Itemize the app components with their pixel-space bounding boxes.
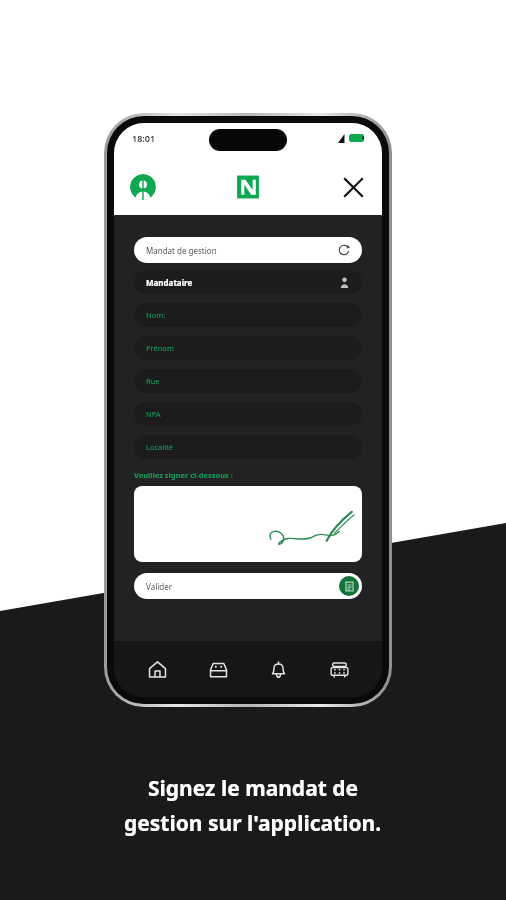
staticText: Veuillez signer ci-dessous : (134, 470, 233, 480)
staticText: Prénom (146, 343, 174, 353)
button[interactable]: Localité (134, 435, 362, 459)
staticText: Mandataire (146, 277, 193, 288)
button[interactable]: Fermer (340, 174, 366, 200)
button[interactable]: Rue (134, 369, 362, 393)
button[interactable]: Mandataire (134, 270, 362, 294)
button[interactable]: Logo (235, 174, 261, 200)
button[interactable]: NPA (134, 402, 362, 426)
button[interactable]: Prénom (134, 336, 362, 360)
button[interactable]: Notifications (261, 652, 295, 686)
button[interactable]: Zone de signature (134, 486, 362, 562)
button[interactable]: Contact (322, 652, 356, 686)
staticText: Nom: (146, 310, 166, 320)
staticText: NPA (146, 409, 161, 419)
staticText: Localité (146, 442, 174, 452)
staticText: 18:01 (132, 132, 156, 144)
staticText: Signez le mandat de (148, 774, 359, 803)
staticText: Rue (146, 376, 160, 386)
button[interactable]: Nom: (134, 303, 362, 327)
button[interactable]: Accueil (140, 652, 174, 686)
button[interactable]: Profil (130, 174, 156, 200)
button[interactable]: Valider (134, 573, 362, 599)
staticText: Mandat de gestion (146, 245, 217, 256)
button[interactable]: Boîte de réception (201, 652, 235, 686)
button[interactable]: Mandat de gestion (134, 237, 362, 263)
staticText: Valider (146, 581, 172, 592)
staticText: gestion sur l'application. (124, 809, 382, 838)
